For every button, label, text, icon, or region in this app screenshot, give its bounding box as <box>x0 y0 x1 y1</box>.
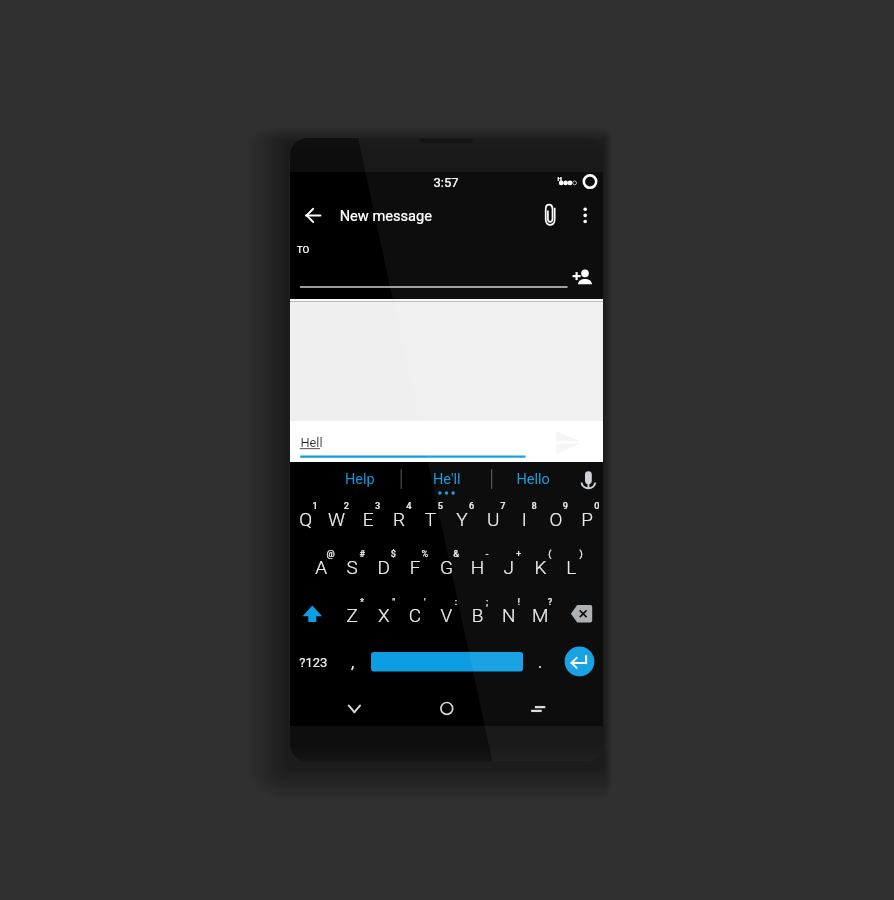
button[interactable]: Backspace <box>556 594 603 640</box>
button[interactable]: Suggestion He'll <box>394 462 484 490</box>
button[interactable]: More options <box>571 199 601 231</box>
button[interactable]: Home <box>426 692 466 726</box>
button[interactable]: Symbols <box>290 642 337 688</box>
button[interactable]: Key M <box>525 594 556 640</box>
button[interactable]: Key R <box>384 498 415 544</box>
button[interactable]: Back <box>300 199 332 231</box>
button[interactable]: Period <box>525 642 556 688</box>
button[interactable]: Key K <box>525 546 556 592</box>
button[interactable]: Key T <box>415 498 446 544</box>
button[interactable]: Message text field <box>300 428 540 458</box>
button[interactable]: Key D <box>368 546 399 592</box>
button[interactable]: Suggestion Hello <box>484 462 569 490</box>
button[interactable]: Recent apps <box>517 692 557 726</box>
button[interactable]: Key H <box>462 546 493 592</box>
button[interactable]: Comma <box>337 642 368 688</box>
button[interactable]: Suggestion Help <box>290 462 394 490</box>
button[interactable]: Key F <box>400 546 431 592</box>
button[interactable]: Attach file <box>536 199 566 231</box>
button[interactable]: Key P <box>572 498 603 544</box>
button[interactable]: Key O <box>540 498 571 544</box>
button[interactable]: Key A <box>306 546 337 592</box>
button[interactable]: Voice input <box>575 462 603 490</box>
button[interactable]: Send <box>551 426 585 458</box>
button[interactable]: Key Z <box>337 594 368 640</box>
button[interactable]: Key E <box>353 498 384 544</box>
button[interactable]: Key S <box>337 546 368 592</box>
button[interactable]: Key L <box>556 546 587 592</box>
button[interactable]: Key U <box>478 498 509 544</box>
button[interactable]: Key Y <box>447 498 478 544</box>
button[interactable]: Enter <box>564 646 596 678</box>
button[interactable]: Space <box>371 642 523 688</box>
button[interactable]: Key C <box>400 594 431 640</box>
button[interactable]: Key Q <box>290 498 321 544</box>
button[interactable]: Hide keyboard <box>334 692 374 726</box>
button[interactable]: Key B <box>462 594 493 640</box>
button[interactable]: Key N <box>493 594 524 640</box>
button[interactable]: Add recipient <box>568 262 598 292</box>
button[interactable]: Recipient field <box>300 262 568 292</box>
button[interactable]: Key X <box>368 594 399 640</box>
button[interactable]: Shift <box>290 594 337 640</box>
button[interactable]: Key W <box>321 498 352 544</box>
button[interactable]: Key G <box>431 546 462 592</box>
button[interactable]: Key V <box>431 594 462 640</box>
button[interactable]: Key I <box>509 498 540 544</box>
button[interactable]: Key J <box>493 546 524 592</box>
